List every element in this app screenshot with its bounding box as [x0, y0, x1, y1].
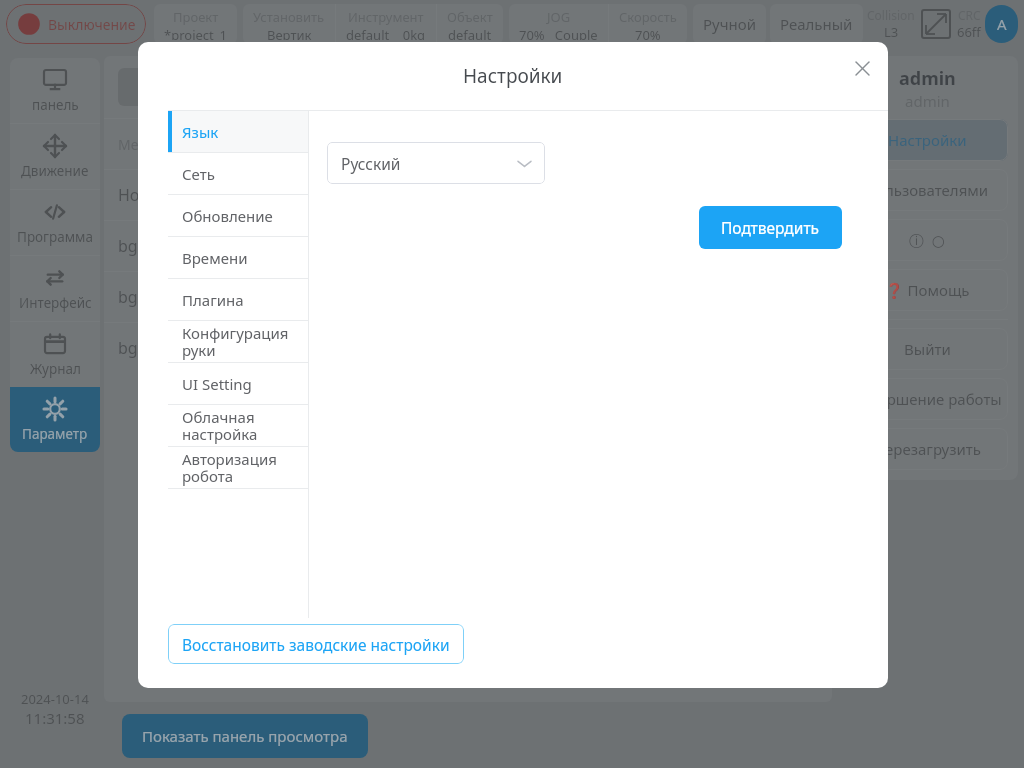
staticText: admin [899, 66, 956, 91]
button[interactable]: Завершение работы [846, 378, 1008, 420]
staticText: Восстановить заводские настройки [182, 634, 450, 655]
staticText: Вертик [267, 26, 312, 40]
button[interactable]: Сеть [168, 153, 308, 194]
button[interactable]: Настройки [846, 119, 1008, 161]
button[interactable] [118, 68, 214, 106]
staticText: JOG [547, 8, 571, 26]
button[interactable]: Интерфейс [10, 256, 100, 321]
button[interactable]: Проект [154, 4, 237, 44]
staticText: Настройки [463, 63, 563, 89]
staticText: Плагина [182, 290, 244, 310]
staticText: 2024-10-14 [21, 690, 89, 708]
button[interactable]: A [985, 5, 1018, 43]
staticText: Ручной [703, 14, 756, 34]
staticText: L3 [884, 23, 899, 41]
staticText: Реальный [780, 14, 853, 34]
staticText: Обновление [182, 206, 273, 226]
staticText: Облачная настройка [182, 407, 308, 445]
staticText: admin [905, 91, 950, 111]
button[interactable]: JOG [509, 4, 608, 44]
button[interactable]: Подтвердить [699, 206, 842, 249]
button[interactable]: Закрыть [848, 54, 876, 82]
button[interactable]: UI Setting [168, 363, 308, 404]
staticText: панель [32, 96, 79, 114]
staticText: Времени [182, 248, 248, 268]
button[interactable]: Пользователями [846, 169, 1008, 211]
staticText: Авторизация робота [182, 449, 308, 487]
button[interactable]: Установить [243, 4, 335, 44]
button[interactable]: Выйти [846, 328, 1008, 370]
button[interactable]: Менеджер [104, 119, 832, 170]
button[interactable]: Плагина [168, 279, 308, 320]
staticText: bgs_3 [118, 337, 162, 359]
button[interactable]: Ручной [693, 4, 766, 44]
staticText: 11:31:58 [25, 708, 85, 728]
staticText: A [997, 14, 1007, 34]
staticText: Завершение работы [853, 389, 1002, 409]
staticText: Подтвердить [721, 217, 820, 238]
button[interactable]: Журнал [10, 322, 100, 387]
staticText: Программа [17, 228, 93, 246]
button[interactable]: Реальный [770, 4, 863, 44]
staticText: Журнал [30, 360, 81, 378]
button[interactable]: Авторизация робота [168, 447, 308, 488]
staticText: Проект [173, 8, 219, 26]
button[interactable]: Инструмент [336, 4, 436, 44]
staticText: 70% [635, 26, 661, 40]
button[interactable]: Обновление [168, 195, 308, 236]
button[interactable]: панель [10, 58, 100, 123]
staticText: Параметр [22, 425, 88, 443]
staticText: Выключение [48, 15, 136, 34]
staticText: Интерфейс [19, 294, 92, 312]
button[interactable]: Восстановить заводские настройки [168, 624, 464, 664]
staticText: 70% Couple [519, 26, 598, 40]
button[interactable]: Выключение [6, 4, 146, 44]
staticText: Collision [867, 7, 915, 23]
staticText: ❓ Помощь [885, 280, 970, 300]
button[interactable]: Показать панель просмотра [122, 714, 368, 758]
staticText: bgs_1 [118, 235, 162, 257]
button[interactable]: Язык [168, 111, 308, 152]
button[interactable]: Облачная настройка [168, 405, 308, 446]
staticText: Объект [447, 8, 493, 26]
staticText: bgs_2 [118, 286, 162, 308]
staticText: Язык [182, 122, 219, 142]
button[interactable]: Перезагрузить [846, 428, 1008, 470]
staticText: default [448, 26, 492, 40]
button[interactable]: ⓘ ○ [846, 219, 1008, 261]
staticText: Конфигурация руки [182, 323, 308, 361]
staticText: Движение [21, 162, 89, 180]
staticText: CRC [958, 7, 981, 23]
button[interactable]: Объект [437, 4, 503, 44]
button[interactable]: bgs_3 [104, 323, 832, 373]
staticText: *project_1 [164, 26, 227, 40]
staticText: Скорость [619, 8, 677, 26]
staticText: ⓘ ○ [909, 230, 945, 250]
staticText: Перезагрузить [874, 439, 981, 459]
staticText: default 0kg [346, 26, 426, 40]
button[interactable]: Движение [10, 124, 100, 189]
staticText: Сеть [182, 164, 215, 184]
staticText: Показать панель просмотра [142, 726, 348, 746]
button[interactable]: Fullscreen [921, 9, 951, 39]
staticText: Установить [253, 8, 325, 26]
staticText: Пользователями [865, 180, 989, 200]
button[interactable]: Скорость [609, 4, 687, 44]
staticText: Русский [341, 153, 401, 174]
button[interactable]: Программа [10, 190, 100, 255]
staticText: Инструмент [348, 8, 424, 26]
button[interactable]: ❓ Помощь [846, 269, 1008, 311]
staticText: House [118, 184, 167, 206]
button[interactable]: House [104, 170, 832, 221]
staticText: 66ff [957, 23, 981, 41]
button[interactable]: Конфигурация руки [168, 321, 308, 362]
button[interactable]: Русский [327, 142, 545, 184]
staticText: Выйти [904, 339, 951, 359]
button[interactable]: bgs_1 [104, 221, 832, 272]
button[interactable]: bgs_2 [104, 272, 832, 323]
staticText: Настройки [888, 130, 967, 150]
button[interactable]: Времени [168, 237, 308, 278]
staticText: Менеджер [118, 135, 190, 154]
staticText: UI Setting [182, 374, 252, 394]
button[interactable]: Параметр [10, 387, 100, 452]
